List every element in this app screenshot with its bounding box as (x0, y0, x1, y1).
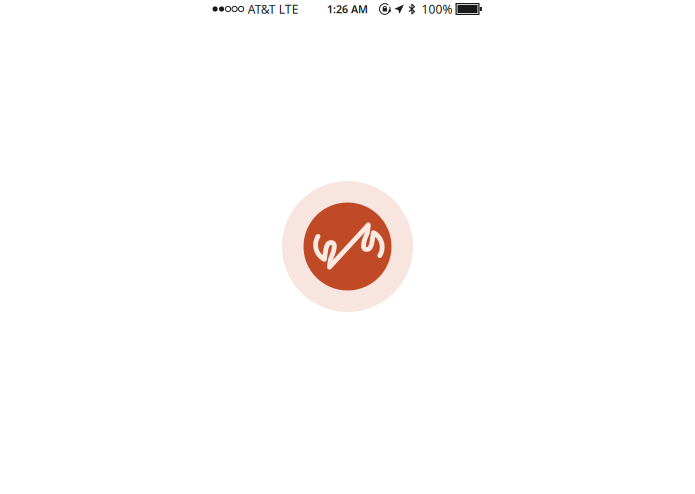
button[interactable]: Open app (282, 181, 413, 312)
staticText: LTE (279, 1, 299, 17)
staticText: 1:26 AM (327, 2, 368, 16)
staticText: 100% (421, 1, 452, 17)
staticText: AT&T (248, 1, 276, 17)
